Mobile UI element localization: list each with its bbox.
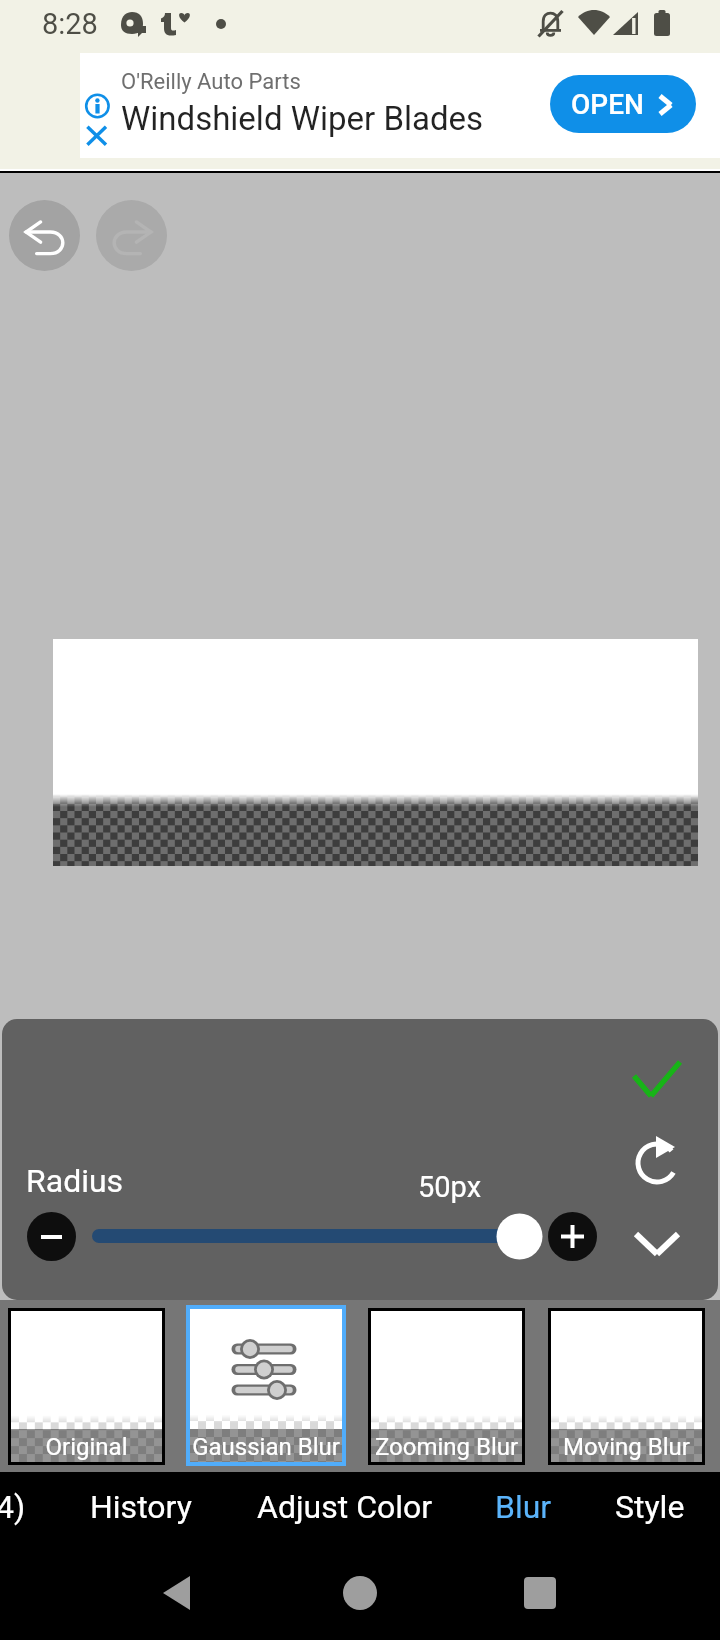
- staticText: 8:28: [42, 7, 98, 41]
- button[interactable]: Collapse: [617, 1202, 697, 1282]
- button[interactable]: Reset: [617, 1119, 697, 1199]
- staticText: Original: [11, 1433, 162, 1461]
- button[interactable]: Back: [140, 1553, 220, 1633]
- button[interactable]: Redo: [96, 200, 167, 271]
- staticText: Gaussian Blur: [190, 1433, 342, 1461]
- button[interactable]: Style: [599, 1470, 701, 1544]
- button[interactable]: Adjust Color: [241, 1470, 449, 1544]
- button[interactable]: O'Reilly Auto Parts: [80, 53, 720, 158]
- button[interactable]: Gaussian Blur: [190, 1309, 342, 1462]
- staticText: Style: [615, 1488, 685, 1526]
- button[interactable]: Home: [320, 1553, 400, 1633]
- staticText: 50px: [418, 1170, 482, 1204]
- staticText: O'Reilly Auto Parts: [121, 69, 301, 95]
- staticText: History: [90, 1488, 192, 1526]
- button[interactable]: OPEN: [550, 75, 696, 133]
- button[interactable]: Undo: [9, 200, 80, 271]
- staticText: OPEN: [571, 88, 644, 121]
- staticText: Adjust Color: [257, 1488, 433, 1526]
- button[interactable]: History: [74, 1470, 208, 1544]
- button[interactable]: Recent apps: [500, 1553, 580, 1633]
- button[interactable]: Apply: [617, 1039, 697, 1119]
- button[interactable]: Zooming Blur: [371, 1311, 522, 1462]
- button[interactable]: Original: [11, 1311, 162, 1462]
- button[interactable]: Blur: [479, 1470, 568, 1544]
- staticText: Blur: [495, 1488, 552, 1526]
- staticText: Zooming Blur: [371, 1433, 522, 1461]
- button[interactable]: Decrease radius: [27, 1212, 76, 1261]
- staticText: 4): [0, 1488, 26, 1526]
- staticText: Moving Blur: [551, 1433, 702, 1461]
- staticText: Radius: [26, 1162, 124, 1200]
- button[interactable]: Moving Blur: [551, 1311, 702, 1462]
- button[interactable]: Increase radius: [548, 1212, 597, 1261]
- staticText: Windshield Wiper Blades: [121, 99, 484, 138]
- button[interactable]: 4): [0, 1470, 42, 1544]
